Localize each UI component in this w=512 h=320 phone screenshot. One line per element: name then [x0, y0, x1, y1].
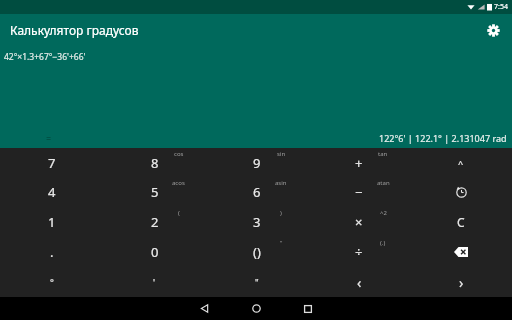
staticText: (: [178, 209, 180, 217]
button[interactable]: asin: [206, 177, 308, 207]
staticText: +: [355, 154, 363, 172]
button[interactable]: ^2: [308, 207, 410, 237]
button[interactable]: (: [103, 207, 206, 237]
staticText: ^: [458, 157, 464, 169]
button[interactable]: tan: [308, 148, 410, 177]
staticText: 8: [151, 154, 159, 172]
staticText: 5: [151, 183, 159, 201]
button[interactable]: ›: [410, 267, 512, 297]
button[interactable]: .: [0, 237, 103, 267]
staticText: (): [253, 243, 261, 261]
staticText: 2: [151, 213, 159, 231]
button[interactable]: (.): [308, 237, 410, 267]
staticText: .: [50, 243, 54, 261]
staticText: °: [50, 276, 54, 288]
staticText: 3: [253, 213, 261, 231]
button[interactable]: Home: [230, 297, 282, 320]
button[interactable]: ^: [410, 148, 512, 177]
button[interactable]: Settings: [480, 17, 506, 43]
staticText: 0: [151, 243, 159, 261]
staticText: sin: [277, 150, 286, 158]
button[interactable]: sin: [206, 148, 308, 177]
button[interactable]: C: [410, 207, 512, 237]
staticText: C: [457, 214, 465, 230]
button[interactable]: 0: [103, 237, 206, 267]
staticText: ÷: [355, 243, 363, 261]
staticText: 1: [48, 213, 56, 231]
button[interactable]: 1: [0, 207, 103, 237]
button[interactable]: 7: [0, 148, 103, 177]
staticText: −: [355, 183, 363, 201]
button[interactable]: ': [103, 267, 206, 297]
staticText: ": [280, 239, 283, 247]
button[interactable]: ": [206, 267, 308, 297]
staticText: 9: [253, 154, 261, 172]
button[interactable]: atan: [308, 177, 410, 207]
staticText: asin: [275, 179, 287, 187]
staticText: acos: [172, 179, 185, 187]
button[interactable]: ": [206, 237, 308, 267]
other: Backspace: [450, 241, 472, 263]
staticText: tan: [378, 150, 388, 158]
staticText: cos: [174, 150, 184, 158]
staticText: 122°6' | 122.1° | 2.131047 rad: [379, 132, 507, 144]
button[interactable]: Back: [178, 297, 230, 320]
staticText: Калькулятор градусов: [10, 22, 139, 38]
staticText: (.): [380, 239, 386, 247]
button[interactable]: Backspace: [410, 237, 512, 267]
staticText: ‹: [357, 273, 362, 292]
staticText: ): [280, 209, 282, 217]
staticText: atan: [377, 179, 390, 187]
button[interactable]: 4: [0, 177, 103, 207]
button[interactable]: °: [0, 267, 103, 297]
staticText: =: [46, 132, 52, 144]
staticText: ×: [355, 213, 363, 231]
other: History: [451, 182, 471, 202]
staticText: ': [153, 276, 156, 288]
button[interactable]: Recents: [282, 297, 334, 320]
button[interactable]: cos: [103, 148, 206, 177]
staticText: 7:54: [494, 2, 508, 12]
staticText: 7: [48, 154, 56, 172]
staticText: ^2: [380, 209, 387, 217]
button[interactable]: ): [206, 207, 308, 237]
button[interactable]: ‹: [308, 267, 410, 297]
staticText: 4: [48, 183, 56, 201]
staticText: 42°×1.3+67°−36'+66': [4, 51, 86, 63]
button[interactable]: acos: [103, 177, 206, 207]
staticText: ›: [459, 273, 464, 292]
staticText: ": [255, 276, 259, 288]
staticText: 6: [253, 183, 261, 201]
button[interactable]: History: [410, 177, 512, 207]
